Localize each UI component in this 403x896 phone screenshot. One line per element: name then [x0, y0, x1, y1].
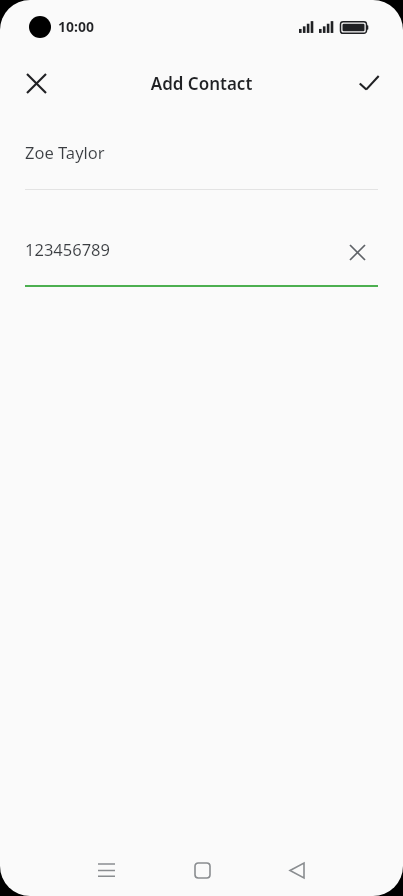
button[interactable]: Zoe Taylor [0, 126, 403, 190]
button[interactable]: Save contact [347, 61, 391, 105]
button[interactable]: Recent apps [84, 848, 128, 892]
button[interactable]: Home [180, 848, 224, 892]
staticText: 123456789 [25, 238, 110, 260]
button[interactable]: Back [275, 848, 319, 892]
button[interactable]: Clear text [336, 231, 378, 273]
staticText: Zoe Taylor [25, 141, 105, 163]
staticText: 10:00 [58, 17, 94, 36]
staticText: Add Contact [0, 72, 403, 95]
button[interactable]: Close [14, 61, 58, 105]
button[interactable]: 123456789 [0, 223, 403, 287]
